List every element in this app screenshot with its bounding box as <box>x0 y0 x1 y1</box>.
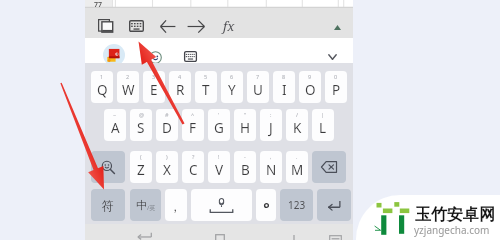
staticText: K <box>293 119 302 137</box>
staticText: ' <box>218 111 220 118</box>
staticText: / <box>296 111 299 118</box>
staticText: ! <box>218 153 220 160</box>
staticText: 4 <box>178 73 182 80</box>
button[interactable]: | <box>312 109 334 141</box>
staticText: 123 <box>288 198 306 212</box>
staticText: 玉竹安卓网 <box>415 205 495 225</box>
button[interactable]: : <box>260 109 282 141</box>
button[interactable]: Split view <box>93 14 117 38</box>
button[interactable]: Collapse formula bar <box>327 17 347 37</box>
staticText: ) <box>166 153 168 160</box>
button[interactable]: Numeric keypad <box>124 14 148 38</box>
button[interactable]: ' <box>208 109 230 141</box>
button[interactable]: Navigation <box>283 224 305 240</box>
staticText: P <box>332 81 341 99</box>
staticText: /英 <box>147 204 156 212</box>
button[interactable]: Navigation <box>133 224 155 240</box>
staticText: S <box>137 119 145 137</box>
button[interactable]: 4 <box>169 71 191 103</box>
button[interactable]: 0 <box>325 71 347 103</box>
staticText: 符 <box>102 198 114 213</box>
button[interactable]: 5 <box>195 71 217 103</box>
button[interactable]: @ <box>130 109 152 141</box>
button[interactable]: ~ <box>104 109 126 141</box>
staticText: @ <box>139 111 144 118</box>
button[interactable]: Backspace <box>312 151 346 183</box>
staticText: 1 <box>100 73 104 80</box>
staticText: Z <box>137 161 145 179</box>
button[interactable]: 3 <box>143 71 165 103</box>
staticText: X <box>163 161 171 179</box>
staticText: W <box>122 81 135 99</box>
staticText: I <box>282 81 287 99</box>
staticText: H <box>240 119 251 137</box>
staticText: N <box>266 161 277 179</box>
button[interactable]: 9 <box>299 71 321 103</box>
button[interactable]: Profile <box>103 44 125 66</box>
staticText: 7 <box>256 73 260 80</box>
staticText: B <box>241 161 250 179</box>
staticText: A <box>111 119 120 137</box>
staticText: . <box>296 153 298 160</box>
button[interactable]: Keyboard layout <box>179 45 201 67</box>
staticText: ^ <box>191 111 195 118</box>
button[interactable]: " <box>234 109 256 141</box>
button[interactable]: / <box>286 109 308 141</box>
staticText: D <box>162 119 172 137</box>
staticText: " <box>244 111 247 118</box>
button[interactable]: 1 <box>91 71 113 103</box>
button[interactable]: ( <box>130 151 152 183</box>
button[interactable]: # <box>156 109 178 141</box>
staticText: ( <box>140 153 142 160</box>
button[interactable]: - <box>234 151 256 183</box>
staticText: , <box>270 153 272 160</box>
staticText: ~ <box>113 111 117 118</box>
button[interactable]: ^ <box>182 109 204 141</box>
staticText: 77 <box>94 0 103 8</box>
button[interactable]: ) <box>156 151 178 183</box>
staticText: 中 <box>136 198 147 212</box>
staticText: 5 <box>204 73 208 80</box>
button[interactable]: Navigation <box>209 224 231 240</box>
staticText: 8 <box>282 73 286 80</box>
button[interactable] <box>256 189 276 221</box>
button[interactable]: ! <box>208 151 230 183</box>
button[interactable]: 2 <box>117 71 139 103</box>
button[interactable]: Search <box>91 151 125 183</box>
staticText: O <box>305 81 316 99</box>
staticText: ， <box>169 199 181 214</box>
staticText: 2 <box>126 73 130 80</box>
button[interactable]: ? <box>182 151 204 183</box>
button[interactable]: 符 <box>91 189 125 221</box>
staticText: G <box>214 119 224 137</box>
staticText: Y <box>228 81 236 99</box>
button[interactable]: Previous cell <box>156 14 180 38</box>
staticText: J <box>269 119 273 137</box>
button[interactable]: fx <box>217 14 241 38</box>
staticText: # <box>165 111 169 118</box>
staticText: C <box>189 161 198 179</box>
button[interactable]: , <box>260 151 282 183</box>
staticText: 6 <box>230 73 234 80</box>
button[interactable]: ， <box>165 189 187 221</box>
button[interactable]: 8 <box>273 71 295 103</box>
staticText: T <box>202 81 210 99</box>
staticText: E <box>150 81 158 99</box>
staticText: 9 <box>308 73 312 80</box>
button[interactable]: Navigation <box>324 224 346 240</box>
staticText: | <box>321 111 325 118</box>
button[interactable]: Next cell <box>184 14 208 38</box>
button[interactable]: Enter <box>317 189 351 221</box>
button[interactable]: Emoji <box>144 46 166 68</box>
staticText: M <box>291 161 304 179</box>
button[interactable]: Space <box>191 189 252 221</box>
button[interactable]: 6 <box>221 71 243 103</box>
button[interactable]: . <box>286 151 308 183</box>
button[interactable]: 123 <box>280 189 313 221</box>
staticText: - <box>244 153 246 160</box>
staticText: 0 <box>334 73 338 80</box>
staticText: ? <box>192 153 195 160</box>
button[interactable]: 中 <box>130 189 161 221</box>
button[interactable]: Hide keyboard <box>321 46 343 68</box>
button[interactable]: 7 <box>247 71 269 103</box>
